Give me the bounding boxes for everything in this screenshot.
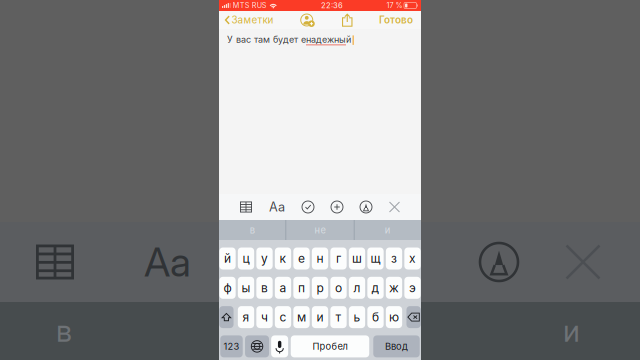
- staticText: э: [409, 280, 416, 295]
- staticText: м: [297, 310, 306, 324]
- staticText: б: [372, 310, 379, 324]
- staticText: MTS RUS: [233, 1, 267, 10]
- button[interactable]: Delete: [406, 306, 421, 328]
- staticText: я: [242, 310, 249, 324]
- staticText: в: [250, 224, 255, 236]
- staticText: к: [279, 251, 286, 266]
- button[interactable]: ф: [219, 277, 236, 299]
- staticText: п: [298, 280, 305, 295]
- button[interactable]: г: [330, 247, 347, 269]
- button[interactable]: у: [256, 247, 273, 269]
- button[interactable]: ы: [238, 277, 254, 299]
- button[interactable]: ч: [256, 306, 273, 328]
- button[interactable]: н: [312, 247, 328, 269]
- button[interactable]: Table: [240, 201, 252, 212]
- staticText: 123: [223, 341, 239, 352]
- button[interactable]: с: [275, 306, 291, 328]
- button[interactable]: з: [386, 247, 402, 269]
- staticText: 17 %: [386, 1, 402, 10]
- button[interactable]: д: [367, 277, 384, 299]
- button[interactable]: Checklist: [302, 201, 314, 213]
- button[interactable]: ю: [386, 306, 402, 328]
- button[interactable]: и: [354, 220, 421, 240]
- staticText: ж: [389, 280, 399, 295]
- staticText: о: [335, 280, 342, 295]
- button[interactable]: Готово: [379, 12, 421, 28]
- button[interactable]: Заметки: [219, 12, 273, 28]
- button[interactable]: и: [312, 306, 328, 328]
- staticText: р: [316, 280, 323, 295]
- button[interactable]: ж: [386, 277, 402, 299]
- staticText: с: [279, 310, 286, 324]
- staticText: щ: [370, 251, 380, 266]
- staticText: ч: [261, 310, 268, 324]
- button[interactable]: ц: [238, 247, 254, 269]
- button[interactable]: Add attachment: [331, 201, 343, 213]
- staticText: е: [298, 251, 305, 266]
- button[interactable]: б: [367, 306, 384, 328]
- button[interactable]: Format: [269, 199, 285, 215]
- button[interactable]: Ввод: [373, 335, 420, 357]
- staticText: л: [353, 280, 360, 295]
- button[interactable]: 123: [220, 335, 243, 357]
- button[interactable]: й: [219, 247, 236, 269]
- button[interactable]: я: [238, 306, 254, 328]
- staticText: з: [391, 251, 397, 266]
- button[interactable]: ь: [349, 306, 365, 328]
- staticText: ь: [353, 310, 360, 324]
- button[interactable]: т: [330, 306, 347, 328]
- staticText: в: [261, 280, 268, 295]
- button[interactable]: э: [404, 277, 421, 299]
- staticText: енадежный: [301, 34, 351, 45]
- button[interactable]: Shift: [219, 306, 233, 328]
- staticText: и: [385, 224, 391, 236]
- staticText: ю: [389, 310, 399, 324]
- staticText: в: [56, 313, 72, 349]
- button[interactable]: а: [275, 277, 291, 299]
- button[interactable]: Markup: [360, 201, 372, 213]
- button[interactable]: о: [330, 277, 347, 299]
- staticText: не: [314, 224, 325, 236]
- staticText: ц: [242, 251, 249, 266]
- staticText: у: [261, 251, 268, 266]
- button[interactable]: в: [219, 220, 285, 240]
- button[interactable]: ш: [349, 247, 365, 269]
- staticText: Ввод: [385, 341, 408, 352]
- button[interactable]: х: [404, 247, 421, 269]
- staticText: Aa: [269, 199, 285, 215]
- staticText: и: [563, 313, 580, 349]
- button[interactable]: п: [293, 277, 310, 299]
- button[interactable]: в: [256, 277, 273, 299]
- button[interactable]: м: [293, 306, 310, 328]
- staticText: н: [316, 251, 323, 266]
- staticText: Готово: [379, 14, 413, 26]
- button[interactable]: Switch keyboard: [245, 335, 269, 357]
- button[interactable]: е: [293, 247, 310, 269]
- staticText: ф: [223, 280, 231, 295]
- button[interactable]: р: [312, 277, 328, 299]
- staticText: д: [371, 280, 379, 295]
- button[interactable]: к: [275, 247, 291, 269]
- staticText: й: [224, 251, 231, 266]
- staticText: Aa: [144, 238, 191, 286]
- button[interactable]: Add people: [300, 12, 314, 27]
- staticText: Пробел: [312, 341, 347, 352]
- staticText: а: [279, 280, 286, 295]
- button[interactable]: щ: [367, 247, 384, 269]
- button[interactable]: Share: [342, 13, 353, 27]
- button[interactable]: л: [349, 277, 365, 299]
- button[interactable]: не: [286, 220, 354, 240]
- staticText: У вас там будет: [227, 34, 301, 45]
- staticText: х: [409, 251, 416, 266]
- staticText: ы: [241, 280, 250, 295]
- button[interactable]: Пробел: [291, 335, 369, 357]
- staticText: ш: [352, 251, 362, 266]
- staticText: 22:36: [321, 1, 343, 10]
- staticText: г: [336, 251, 341, 266]
- staticText: т: [335, 310, 341, 324]
- staticText: Заметки: [231, 14, 273, 26]
- button[interactable]: Dictate: [271, 335, 288, 357]
- button[interactable]: Close keyboard: [389, 201, 400, 212]
- staticText: и: [316, 310, 323, 324]
